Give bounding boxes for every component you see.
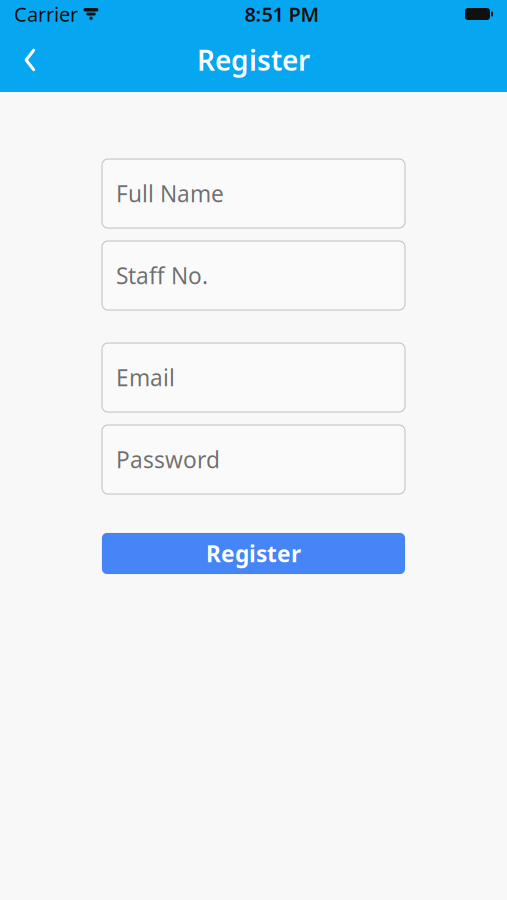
button[interactable]: Email: [102, 343, 405, 412]
staticText: Password: [116, 444, 220, 474]
button[interactable]: Back: [6, 36, 54, 84]
staticText: Carrier: [14, 1, 78, 27]
button[interactable]: Full Name: [102, 159, 405, 228]
staticText: Email: [116, 362, 175, 392]
staticText: Register: [197, 41, 310, 79]
staticText: Full Name: [116, 178, 224, 208]
staticText: Staff No.: [116, 260, 208, 290]
staticText: Register: [206, 538, 301, 568]
button[interactable]: Register: [102, 533, 405, 574]
button[interactable]: Staff No.: [102, 241, 405, 310]
staticText: 8:51 PM: [244, 1, 319, 27]
button[interactable]: Password: [102, 425, 405, 494]
